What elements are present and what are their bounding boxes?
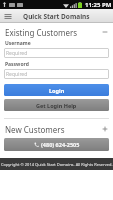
- staticText: (480) 624-2505: [41, 141, 80, 148]
- button[interactable]: New Customers: [0, 123, 113, 135]
- button[interactable]: Open navigation menu: [2, 11, 13, 22]
- button[interactable]: (480) 624-2505: [4, 138, 109, 151]
- staticText: Quick Start Domains: [23, 12, 90, 21]
- button[interactable]: Required: [4, 69, 109, 79]
- staticText: Username: [5, 40, 31, 47]
- staticText: Required: [6, 50, 28, 57]
- staticText: Required: [6, 71, 28, 78]
- staticText: Existing Customers: [5, 27, 78, 38]
- staticText: Login: [49, 87, 65, 94]
- button[interactable]: Existing Customers: [0, 26, 113, 38]
- button[interactable]: Login: [4, 84, 109, 96]
- button[interactable]: Required: [4, 48, 109, 58]
- staticText: Password: [5, 61, 29, 68]
- staticText: Get Login Help: [36, 102, 77, 109]
- staticText: New Customers: [5, 124, 65, 135]
- button[interactable]: Get Login Help: [4, 99, 109, 111]
- staticText: Copyright © 2014 Quick Start Domains. Al…: [1, 162, 113, 167]
- staticText: 11:25 PM: [85, 1, 112, 9]
